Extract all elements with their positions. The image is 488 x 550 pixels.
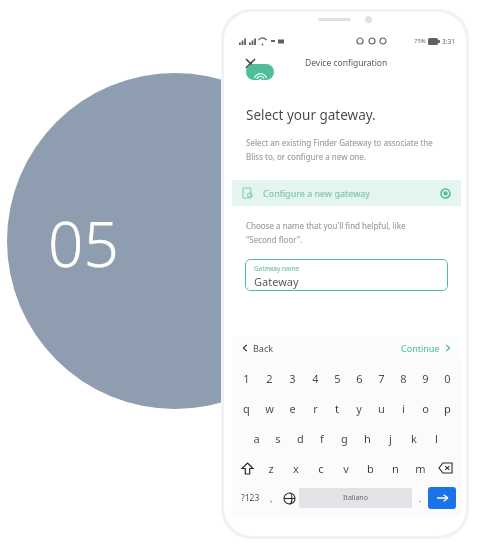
button[interactable]: d: [289, 423, 311, 453]
staticText: 3: [289, 371, 296, 386]
button[interactable]: 3: [281, 363, 304, 393]
button[interactable]: 9: [414, 363, 436, 393]
button[interactable]: m: [408, 453, 433, 483]
button[interactable]: Backspace: [433, 453, 458, 483]
staticText: Continue: [401, 342, 440, 354]
button[interactable]: q: [235, 393, 258, 423]
button[interactable]: Back: [242, 342, 274, 354]
button[interactable]: n: [383, 453, 408, 483]
button[interactable]: .: [412, 483, 428, 513]
staticText: l: [435, 431, 438, 446]
staticText: 1: [243, 371, 250, 386]
button[interactable]: v: [333, 453, 358, 483]
staticText: a: [253, 431, 260, 446]
button[interactable]: ,: [263, 483, 279, 513]
button[interactable]: p: [436, 393, 458, 423]
staticText: p: [444, 401, 451, 416]
button[interactable]: Change language: [279, 483, 299, 513]
staticText: .: [419, 492, 422, 504]
staticText: v: [343, 461, 349, 476]
button[interactable]: f: [311, 423, 333, 453]
staticText: d: [297, 431, 304, 446]
button[interactable]: Enter: [428, 487, 456, 509]
button[interactable]: y: [348, 393, 370, 423]
button[interactable]: o: [414, 393, 436, 423]
button[interactable]: 6: [348, 363, 370, 393]
staticText: Gateway: [254, 274, 299, 289]
staticText: 5: [334, 371, 341, 386]
staticText: 9: [422, 371, 429, 386]
staticText: m: [415, 461, 426, 476]
button[interactable]: 5: [326, 363, 348, 393]
staticText: 0: [444, 371, 451, 386]
staticText: o: [422, 401, 429, 416]
button[interactable]: Configure a new gateway: [232, 180, 461, 206]
staticText: 6: [356, 371, 363, 386]
button[interactable]: Continue: [401, 342, 451, 354]
button[interactable]: 8: [392, 363, 414, 393]
staticText: r: [313, 401, 318, 416]
button[interactable]: w: [258, 393, 281, 423]
button[interactable]: l: [425, 423, 448, 453]
button[interactable]: k: [402, 423, 425, 453]
button[interactable]: i: [392, 393, 414, 423]
staticText: y: [356, 401, 362, 416]
button[interactable]: t: [326, 393, 348, 423]
staticText: ,: [270, 492, 273, 504]
staticText: Italiano: [343, 493, 368, 503]
staticText: q: [243, 401, 250, 416]
button[interactable]: Italiano: [299, 488, 412, 508]
staticText: w: [265, 401, 274, 416]
staticText: b: [367, 461, 374, 476]
staticText: t: [335, 401, 339, 416]
staticText: Select your gateway.: [246, 106, 376, 124]
staticText: u: [378, 401, 385, 416]
button[interactable]: ?123: [237, 483, 263, 513]
staticText: 8: [400, 371, 407, 386]
staticText: Device configuration: [305, 57, 388, 69]
staticText: 05: [48, 201, 119, 285]
button[interactable]: c: [308, 453, 333, 483]
staticText: n: [392, 461, 399, 476]
button[interactable]: a: [245, 423, 267, 453]
button[interactable]: 7: [370, 363, 392, 393]
button[interactable]: h: [356, 423, 379, 453]
button[interactable]: Close: [240, 53, 260, 73]
button[interactable]: 0: [436, 363, 458, 393]
staticText: ?123: [241, 492, 260, 504]
button[interactable]: Shift: [235, 453, 259, 483]
staticText: 4: [312, 371, 319, 386]
staticText: h: [364, 431, 371, 446]
staticText: Configure a new gateway: [263, 187, 370, 199]
button[interactable]: 4: [304, 363, 326, 393]
staticText: Back: [253, 342, 274, 354]
button[interactable]: 1: [235, 363, 258, 393]
staticText: Select an existing Finder Gateway to ass…: [246, 137, 433, 162]
button[interactable]: e: [281, 393, 304, 423]
button[interactable]: x: [283, 453, 308, 483]
staticText: 75%: [414, 37, 426, 45]
staticText: e: [289, 401, 296, 416]
button[interactable]: s: [267, 423, 289, 453]
button[interactable]: u: [370, 393, 392, 423]
button[interactable]: b: [358, 453, 383, 483]
staticText: 2: [266, 371, 273, 386]
staticText: g: [341, 431, 348, 446]
button[interactable]: j: [379, 423, 402, 453]
button[interactable]: r: [304, 393, 326, 423]
staticText: s: [275, 431, 281, 446]
staticText: i: [402, 401, 405, 416]
button[interactable]: 2: [258, 363, 281, 393]
staticText: j: [389, 431, 392, 446]
staticText: Gateway name: [254, 264, 300, 273]
staticText: Choose a name that you'll find helpful, …: [246, 220, 406, 245]
staticText: 7: [378, 371, 385, 386]
button[interactable]: z: [259, 453, 283, 483]
button[interactable]: g: [333, 423, 356, 453]
staticText: c: [318, 461, 324, 476]
button[interactable]: Gateway name: [245, 259, 448, 291]
staticText: 3:31: [442, 37, 455, 46]
staticText: x: [293, 461, 299, 476]
staticText: f: [320, 431, 324, 446]
staticText: k: [411, 431, 417, 446]
